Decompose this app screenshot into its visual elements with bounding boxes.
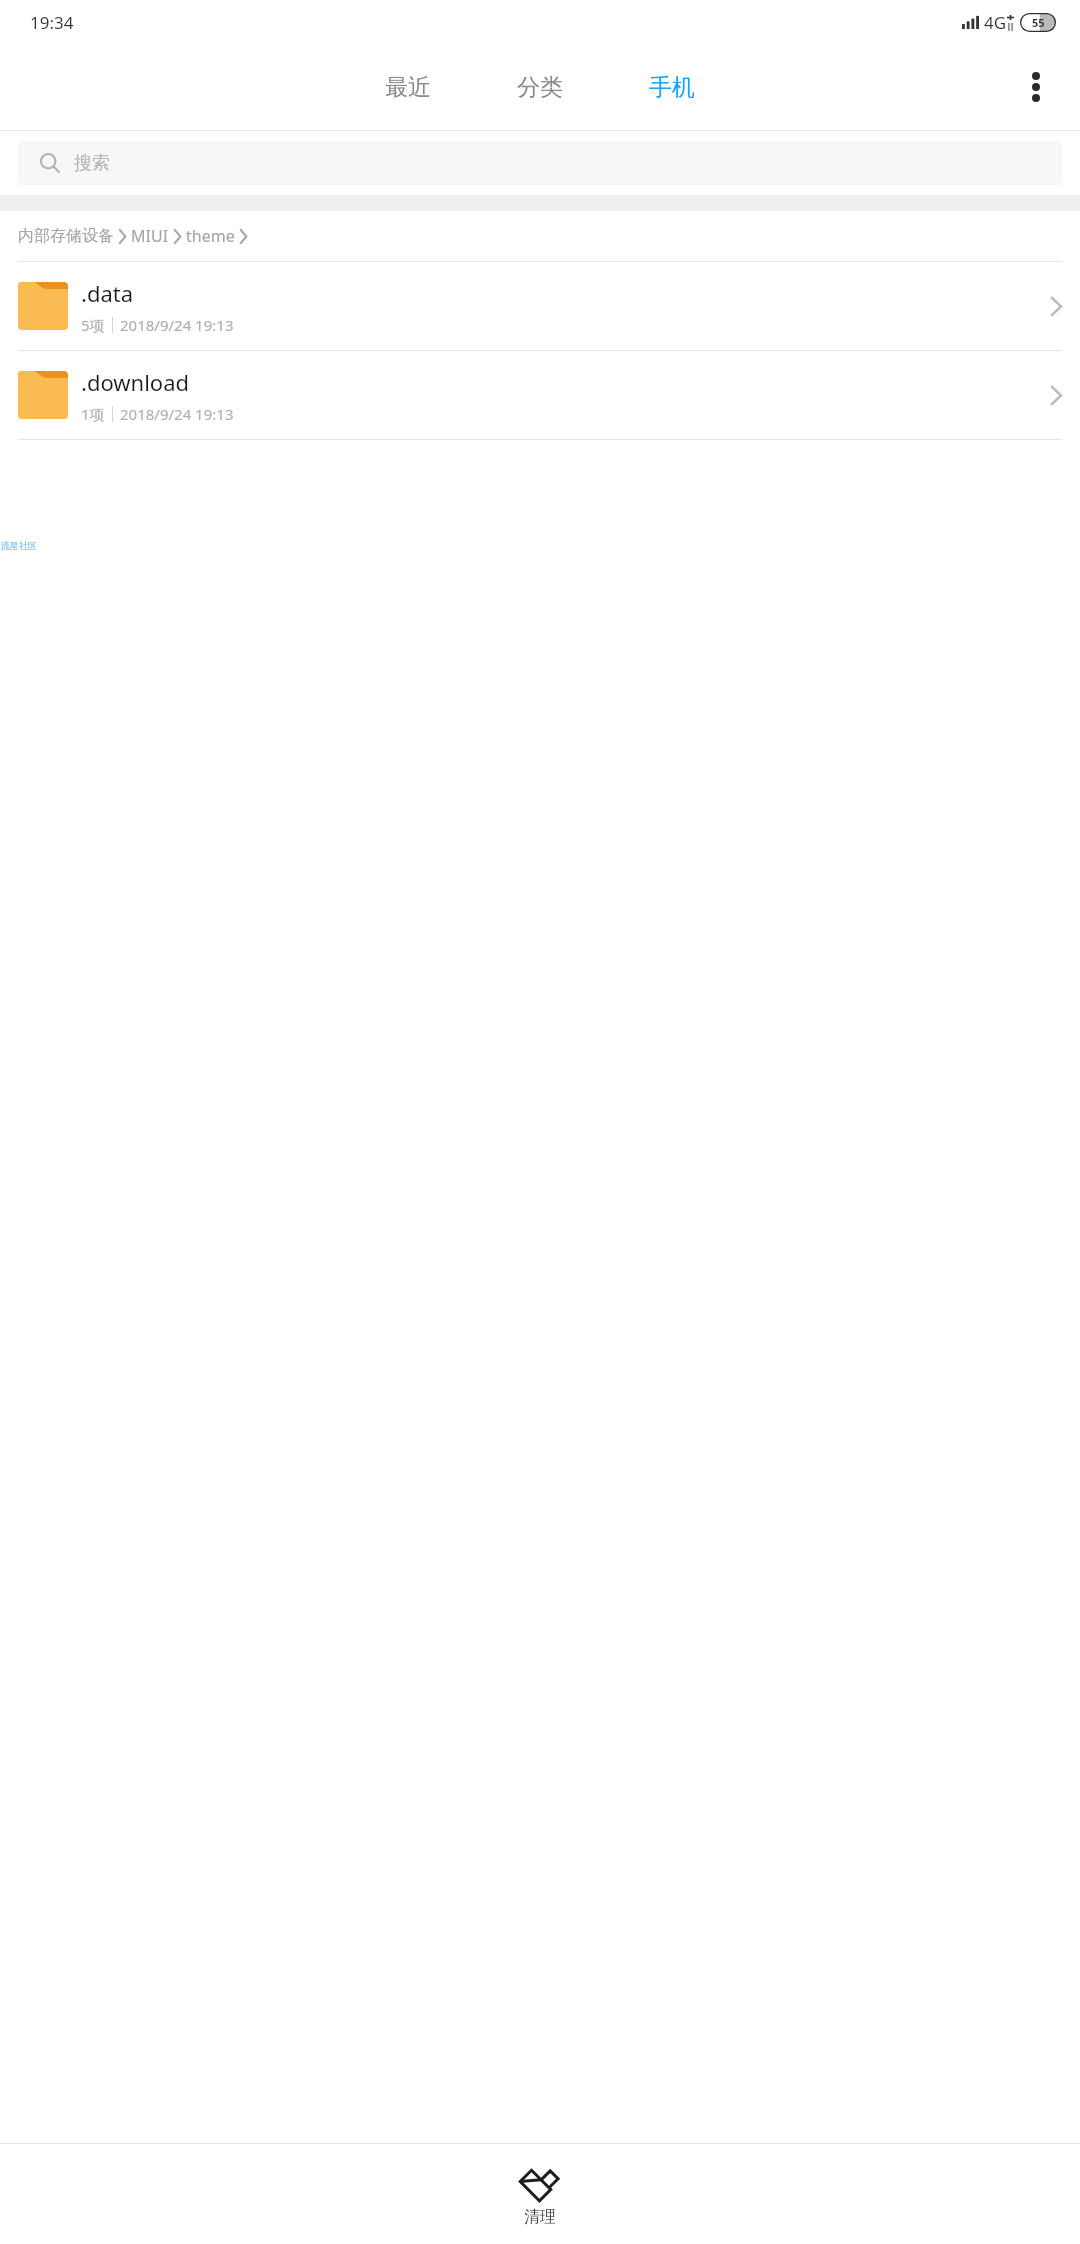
staticText: 1项 (81, 404, 105, 424)
button[interactable]: .data (0, 262, 1080, 350)
staticText: 55 (1032, 15, 1045, 30)
staticText: 搜索 (74, 152, 110, 175)
button[interactable]: 清理 (0, 2144, 1080, 2244)
staticText: 分类 (517, 73, 563, 102)
button[interactable]: 分类 (509, 67, 571, 108)
staticText: 4G (984, 11, 1007, 34)
staticText: 5项 (81, 315, 105, 335)
staticText: 2018/9/24 19:13 (120, 404, 234, 424)
button[interactable]: 手机 (641, 67, 703, 108)
staticText: .data (81, 278, 134, 308)
staticText: theme (186, 225, 235, 247)
staticText: 2018/9/24 19:13 (120, 315, 234, 335)
staticText: 流星社区 (1, 540, 37, 551)
staticText: .download (81, 367, 190, 397)
staticText: 内部存储设备 (18, 226, 114, 246)
staticText: 19:34 (30, 11, 74, 34)
button[interactable]: More options (1008, 59, 1064, 115)
button[interactable]: 最近 (377, 67, 439, 108)
staticText: 手机 (649, 73, 695, 102)
staticText: 最近 (385, 73, 431, 102)
staticText: MIUI (131, 225, 169, 247)
button[interactable]: 搜索 (18, 141, 1062, 185)
button[interactable]: .download (0, 351, 1080, 439)
staticText: 清理 (524, 2207, 556, 2227)
